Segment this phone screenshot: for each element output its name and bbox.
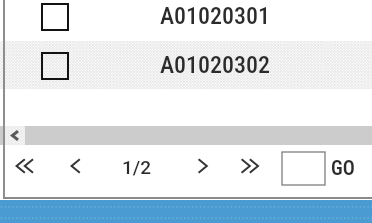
button[interactable]: Scroll left bbox=[3, 126, 25, 145]
button[interactable]: Last page bbox=[241, 157, 260, 175]
button[interactable]: GO bbox=[331, 156, 355, 179]
button[interactable]: Previous page bbox=[70, 157, 81, 175]
staticText: A01020302 bbox=[160, 51, 271, 79]
button[interactable]: A01020301 bbox=[0, 0, 372, 41]
button[interactable]: First page bbox=[15, 157, 34, 175]
button[interactable]: A01020302 bbox=[0, 41, 372, 89]
button[interactable] bbox=[282, 152, 325, 185]
staticText: 1/2 bbox=[122, 156, 152, 178]
button[interactable]: Next page bbox=[198, 157, 209, 175]
staticText: A01020301 bbox=[160, 2, 271, 30]
